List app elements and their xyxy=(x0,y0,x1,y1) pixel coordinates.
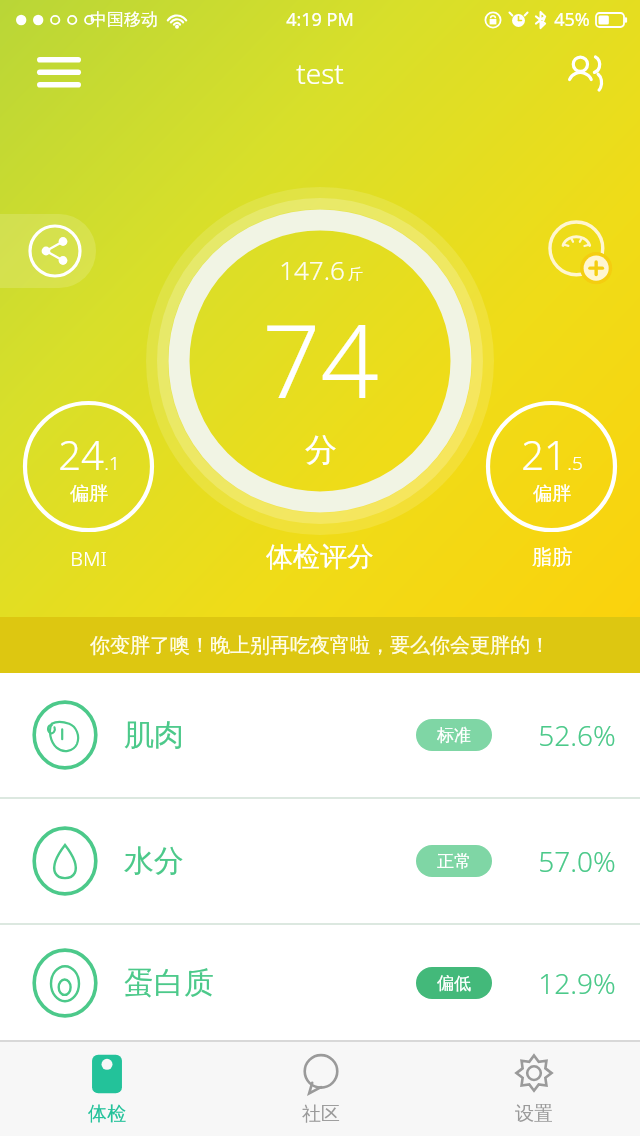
button[interactable]: 肌肉 xyxy=(0,673,640,797)
staticText: 147.6 xyxy=(279,252,345,287)
staticText: 体检 xyxy=(88,1102,126,1126)
staticText: 4:19 PM xyxy=(286,7,354,32)
button[interactable]: 蛋白质 xyxy=(0,925,640,1040)
button[interactable]: 水分 xyxy=(0,799,640,923)
staticText: 偏胖 xyxy=(533,482,571,506)
staticText: 偏低 xyxy=(437,973,471,994)
staticText: test xyxy=(296,54,344,92)
button[interactable]: 147.6 xyxy=(155,196,485,526)
staticText: 标准 xyxy=(437,725,471,746)
staticText: 中国移动 xyxy=(90,9,158,30)
staticText: .1 xyxy=(104,450,120,476)
button[interactable]: Add measurement xyxy=(546,218,612,284)
button[interactable]: 体检 xyxy=(0,1042,214,1136)
button[interactable]: Users xyxy=(554,42,616,104)
staticText: 肌肉 xyxy=(124,716,184,754)
button[interactable]: 24 xyxy=(22,400,155,533)
staticText: 你变胖了噢！晚上别再吃夜宵啦，要么你会更胖的！ xyxy=(90,633,550,658)
staticText: 74 xyxy=(262,289,379,428)
staticText: 水分 xyxy=(124,842,184,880)
button[interactable]: 21 xyxy=(485,400,618,533)
staticText: 45% xyxy=(554,7,590,32)
button[interactable]: 设置 xyxy=(427,1042,640,1136)
staticText: BMI xyxy=(70,545,107,572)
button[interactable]: Menu xyxy=(28,42,90,104)
staticText: 斤 xyxy=(348,265,363,284)
staticText: .5 xyxy=(567,450,583,476)
staticText: 分 xyxy=(305,430,337,470)
staticText: 正常 xyxy=(437,851,471,872)
staticText: 脂肪 xyxy=(532,545,572,570)
staticText: 体检评分 xyxy=(266,540,374,574)
staticText: 24 xyxy=(58,427,104,481)
staticText: 12.9% xyxy=(538,964,616,1002)
staticText: 蛋白质 xyxy=(124,964,214,1002)
staticText: 21 xyxy=(521,427,567,481)
staticText: 57.0% xyxy=(538,842,616,880)
staticText: 社区 xyxy=(302,1102,340,1126)
button[interactable]: 社区 xyxy=(214,1042,427,1136)
staticText: 偏胖 xyxy=(70,482,108,506)
button[interactable]: Share xyxy=(0,214,96,288)
staticText: 52.6% xyxy=(538,716,616,754)
staticText: 设置 xyxy=(515,1102,553,1126)
